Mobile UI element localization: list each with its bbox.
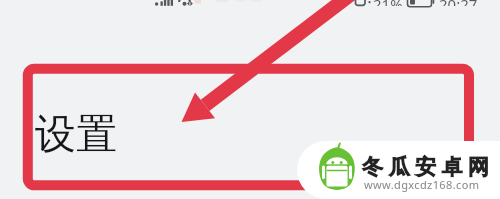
button[interactable]: 设置 [24,104,134,164]
staticText: 20:27 [439,0,478,6]
button[interactable]: 冬瓜安卓网 www.dgxcdz168.com [297,141,500,199]
staticText: 设置 [35,109,117,161]
staticText: 冬瓜安卓网 [362,154,495,180]
staticText: www.dgxcdz168.com [364,177,480,192]
staticText: 21% [373,0,403,6]
